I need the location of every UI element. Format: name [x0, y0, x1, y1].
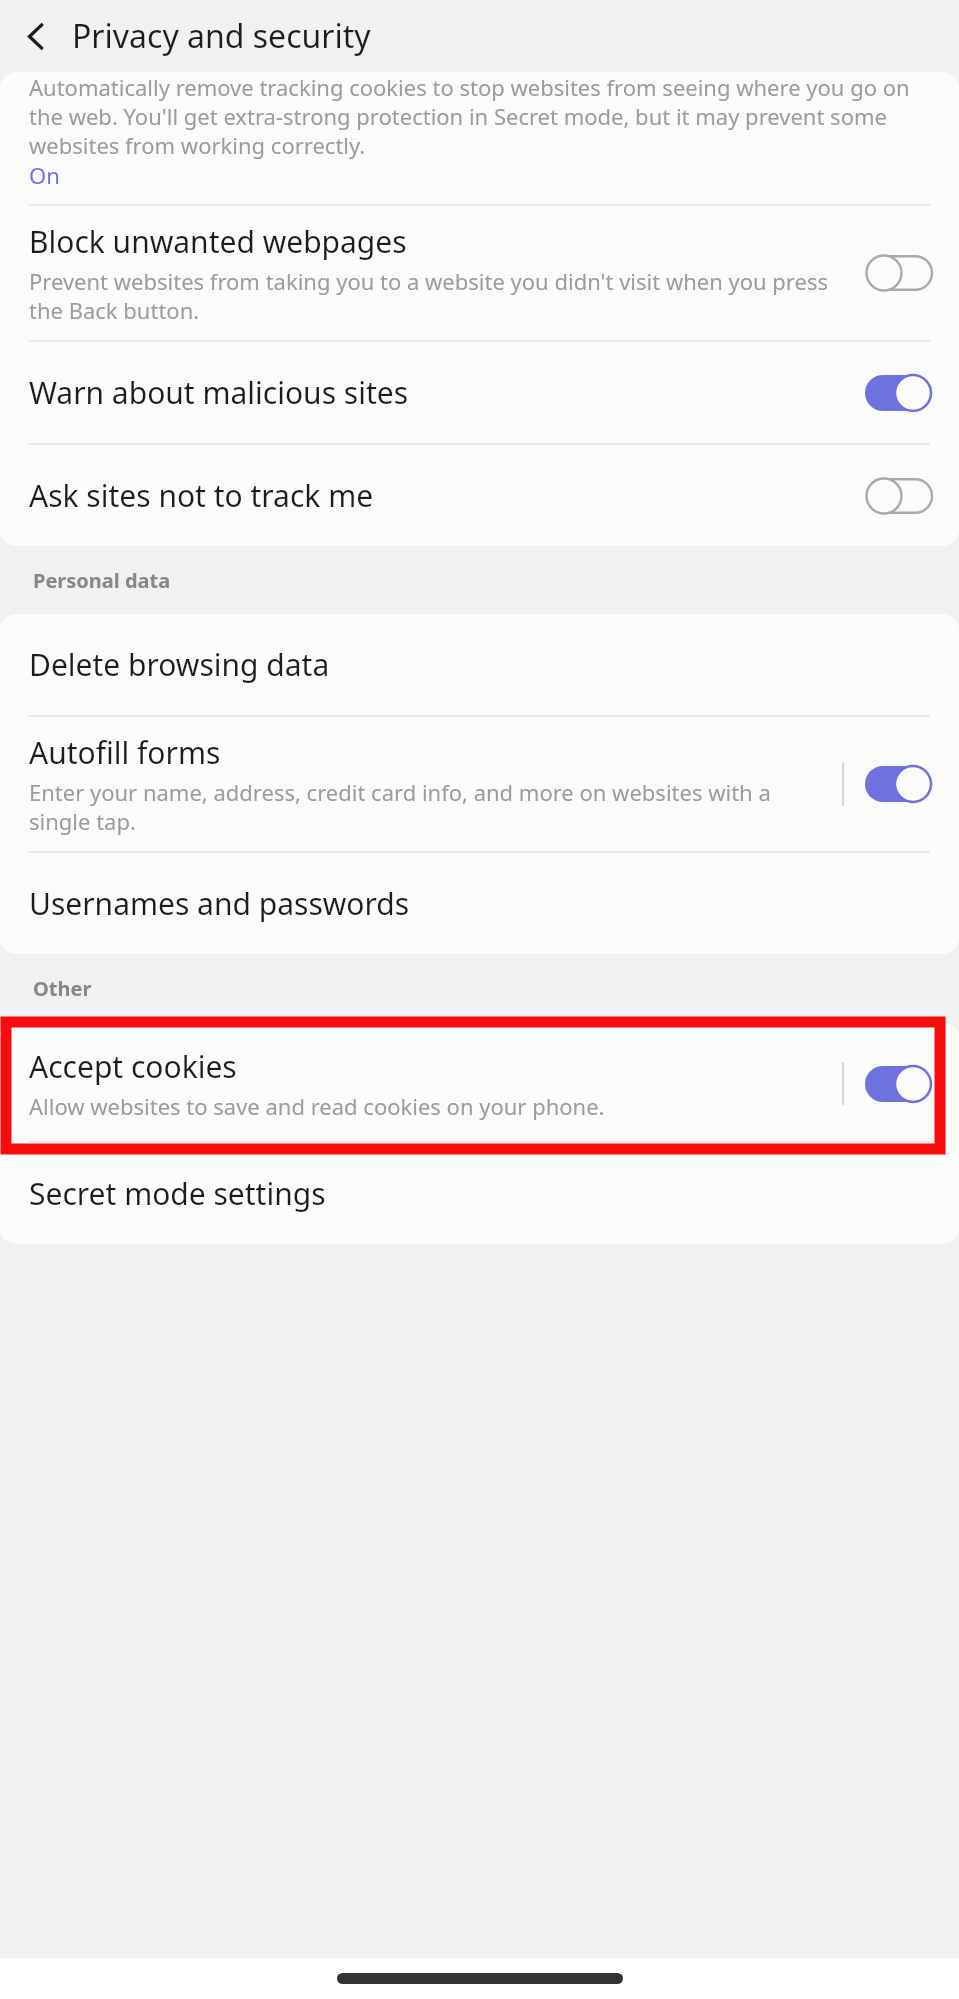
staticText: Other [33, 975, 92, 1002]
button[interactable]: Back [0, 0, 72, 72]
staticText: Ask sites not to track me [29, 475, 865, 516]
button[interactable]: Block unwanted webpages [0, 206, 959, 340]
staticText: Warn about malicious sites [29, 372, 865, 413]
staticText: Automatically remove tracking cookies to… [29, 72, 930, 160]
button[interactable]: Autofill forms [0, 717, 959, 851]
staticText: Privacy and security [72, 14, 371, 58]
button[interactable]: Ask sites not to track me [0, 445, 959, 546]
staticText: Delete browsing data [29, 644, 330, 685]
button[interactable]: Usernames and passwords [0, 853, 959, 954]
staticText: Block unwanted webpages [29, 221, 407, 262]
staticText: Personal data [33, 567, 171, 594]
staticText: Accept cookies [29, 1046, 237, 1087]
button[interactable]: Automatically remove tracking cookies to… [0, 72, 959, 204]
button[interactable]: Secret mode settings [0, 1143, 959, 1244]
staticText: Usernames and passwords [29, 883, 410, 924]
staticText: Prevent websites from taking you to a we… [29, 266, 847, 325]
staticText: Enter your name, address, credit card in… [29, 777, 826, 836]
button[interactable]: Delete browsing data [0, 614, 959, 715]
staticText: Allow websites to save and read cookies … [29, 1091, 605, 1121]
button[interactable]: Accept cookies [0, 1022, 959, 1141]
staticText: Secret mode settings [29, 1173, 326, 1214]
staticText: On [29, 160, 60, 190]
button[interactable]: Warn about malicious sites [0, 342, 959, 443]
staticText: Autofill forms [29, 732, 221, 773]
